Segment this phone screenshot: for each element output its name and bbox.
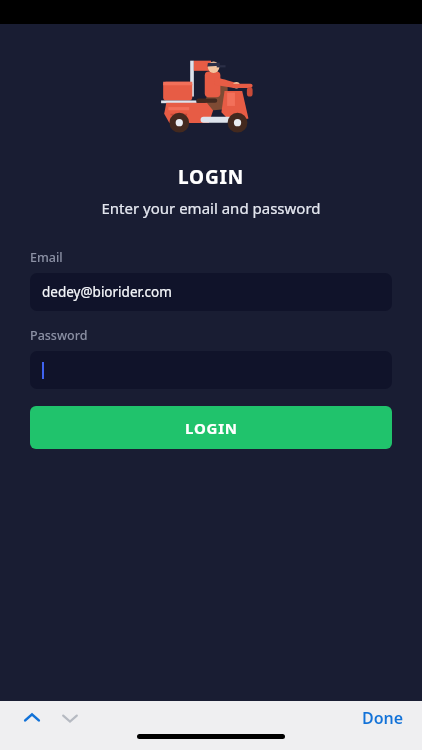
- button[interactable]: LOGIN: [30, 406, 392, 449]
- button[interactable]: Next field: [52, 701, 88, 734]
- button[interactable]: dedey@biorider.com: [30, 273, 392, 311]
- button[interactable]: Done: [358, 703, 408, 733]
- button[interactable]: [30, 351, 392, 389]
- staticText: dedey@biorider.com: [42, 283, 172, 301]
- staticText: Password: [30, 327, 88, 344]
- staticText: LOGIN: [178, 164, 244, 190]
- staticText: Email: [30, 249, 63, 266]
- button[interactable]: Previous field: [14, 701, 50, 734]
- staticText: Enter your email and password: [101, 198, 321, 218]
- staticText: LOGIN: [185, 418, 238, 438]
- staticText: Done: [362, 707, 404, 729]
